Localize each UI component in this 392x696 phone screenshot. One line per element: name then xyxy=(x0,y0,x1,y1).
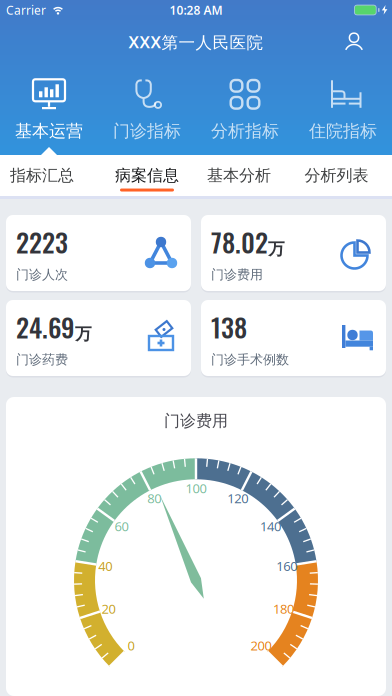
staticText: 基本运营 xyxy=(15,120,83,142)
staticText: 160 xyxy=(276,557,297,575)
staticText: 78.02万 xyxy=(211,223,285,261)
button[interactable]: 病案信息 xyxy=(98,155,196,196)
staticText: 80 xyxy=(147,489,161,507)
button[interactable]: 指标汇总 xyxy=(0,155,87,196)
button[interactable]: 基本运营 xyxy=(0,64,98,155)
staticText: 0 xyxy=(127,636,134,654)
button[interactable]: 138 xyxy=(201,300,386,376)
staticText: 门诊药费 xyxy=(16,352,68,368)
staticText: 20 xyxy=(101,600,115,618)
staticText: 分析指标 xyxy=(211,120,279,142)
staticText: 180 xyxy=(273,600,294,618)
button[interactable]: 78.02万 xyxy=(201,215,386,291)
button[interactable]: 基本分析 xyxy=(194,155,284,196)
staticText: 100 xyxy=(185,479,206,497)
staticText: 门诊指标 xyxy=(113,120,181,142)
staticText: Carrier xyxy=(6,2,46,18)
staticText: 120 xyxy=(227,489,248,507)
staticText: 24.69万 xyxy=(16,308,92,346)
button[interactable]: 24.69万 xyxy=(6,300,191,376)
staticText: XXX第一人民医院 xyxy=(128,31,263,53)
staticText: 基本分析 xyxy=(207,165,271,186)
button[interactable]: 住院指标 xyxy=(294,64,392,155)
staticText: 门诊手术例数 xyxy=(211,352,289,368)
button[interactable]: 分析指标 xyxy=(196,64,294,155)
staticText: 10:28 AM xyxy=(169,2,222,18)
staticText: 200 xyxy=(251,636,272,654)
staticText: 60 xyxy=(115,517,129,535)
staticText: 140 xyxy=(260,517,281,535)
staticText: 门诊费用 xyxy=(164,411,228,431)
button[interactable]: 2223 xyxy=(6,215,191,291)
staticText: 138 xyxy=(211,308,247,346)
staticText: 病案信息 xyxy=(115,165,179,186)
staticText: 门诊费用 xyxy=(211,267,263,283)
staticText: 40 xyxy=(98,557,112,575)
staticText: 门诊人次 xyxy=(16,267,68,283)
button[interactable]: 用户 xyxy=(344,31,392,52)
staticText: 指标汇总 xyxy=(10,165,74,186)
button[interactable]: 门诊指标 xyxy=(98,64,196,155)
staticText: 2223 xyxy=(16,223,68,261)
staticText: 分析列表 xyxy=(304,165,368,186)
staticText: 住院指标 xyxy=(309,120,377,142)
button[interactable]: 分析列表 xyxy=(291,155,381,196)
